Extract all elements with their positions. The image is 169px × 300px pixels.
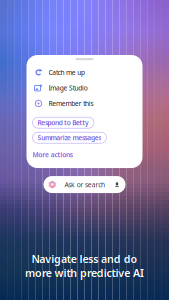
staticText: Summarize messages: [37, 133, 101, 142]
button[interactable]: Respond to Betty: [32, 117, 94, 128]
staticText: Ask or search: [64, 180, 105, 189]
button[interactable]: Ask or search: [43, 176, 125, 193]
staticText: Catch me up: [48, 68, 85, 77]
button[interactable]: More actions: [26, 143, 142, 168]
staticText: Navigate less and do: [31, 252, 137, 266]
staticText: Remember this: [48, 99, 93, 108]
button[interactable]: Catch me up: [26, 65, 142, 80]
button[interactable]: Image Studio: [26, 80, 142, 96]
button[interactable]: Remember this: [26, 96, 142, 111]
staticText: Respond to Betty: [37, 118, 89, 127]
button[interactable]: Summarize messages: [32, 132, 106, 143]
staticText: Image Studio: [48, 83, 88, 92]
staticText: More actions: [32, 150, 73, 159]
staticText: more with predictive AI: [25, 266, 144, 280]
